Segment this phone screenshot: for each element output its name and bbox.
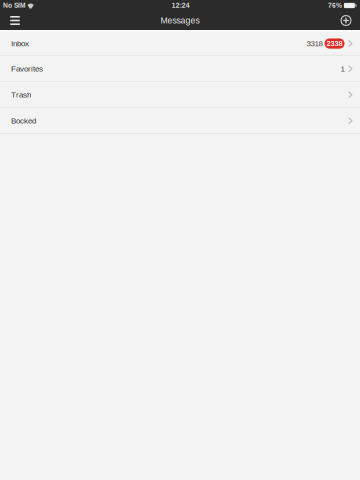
staticText: Bocked (11, 116, 36, 125)
staticText: 76% (328, 2, 342, 9)
staticText: 3318 (306, 39, 322, 48)
staticText: Favorites (11, 64, 43, 73)
staticText: 1 (340, 64, 344, 73)
staticText: Trash (11, 90, 31, 99)
button[interactable]: Menu (0, 11, 30, 30)
staticText: No SIM (3, 2, 26, 9)
staticText: 2338 (326, 39, 342, 48)
button[interactable]: Bocked (0, 108, 360, 134)
button[interactable]: Favorites (0, 56, 360, 82)
staticText: Messages (160, 16, 199, 25)
staticText: 12:24 (172, 2, 190, 9)
button[interactable]: Trash (0, 82, 360, 108)
staticText: Inbox (11, 39, 29, 48)
button[interactable]: Compose (332, 11, 360, 30)
button[interactable]: Inbox (0, 30, 360, 56)
